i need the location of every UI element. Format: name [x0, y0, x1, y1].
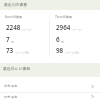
button[interactable]: 中村 晶也 — [0, 80, 100, 92]
staticText: 2964 — [56, 23, 71, 32]
staticText: 73 — [6, 46, 14, 55]
staticText: ページ/日 — [15, 51, 30, 55]
button[interactable]: 中村 晶也 — [0, 93, 100, 100]
staticText: 中村 晶也 — [4, 84, 18, 88]
staticText: ページ — [72, 28, 82, 32]
staticText: 6 — [56, 35, 60, 44]
staticText: 6月の読書量 — [5, 15, 23, 19]
staticText: ページ — [22, 28, 32, 32]
staticText: ページ/日 — [65, 51, 80, 55]
staticText: 最近読んだ書籍 — [3, 66, 31, 71]
staticText: 2248 — [6, 23, 21, 32]
staticText: 98 — [56, 46, 64, 55]
staticText: 冊 — [11, 40, 15, 44]
staticText: 冊 — [61, 40, 65, 44]
staticText: 7 — [6, 35, 10, 44]
staticText: 中村 晶也 — [4, 95, 18, 99]
staticText: 最近の読書量 — [4, 2, 28, 7]
staticText: 7月の読書量 — [55, 15, 73, 19]
